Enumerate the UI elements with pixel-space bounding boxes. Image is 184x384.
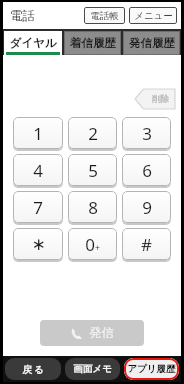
staticText: ∗ (31, 234, 46, 254)
staticText: 1 (33, 122, 43, 145)
staticText: ダイヤル (9, 36, 57, 50)
staticText: # (141, 233, 152, 256)
staticText: 発信 (89, 325, 114, 341)
button[interactable]: 6 (122, 154, 171, 186)
staticText: 画面メモ (73, 363, 112, 375)
staticText: 2 (88, 122, 98, 145)
button[interactable]: 8 (68, 191, 117, 223)
button[interactable]: 3 (122, 117, 171, 149)
button[interactable]: 削除 (135, 89, 175, 109)
button[interactable]: 発信履歴 (123, 31, 180, 55)
staticText: 9 (142, 196, 152, 219)
button[interactable]: 1 (13, 117, 63, 149)
staticText: 発信履歴 (129, 36, 175, 50)
button[interactable]: アプリ履歴 (124, 358, 179, 380)
staticText: 着信履歴 (70, 36, 116, 50)
button[interactable]: 7 (13, 191, 63, 223)
staticText: 電話帳 (90, 10, 119, 22)
staticText: 3 (142, 122, 152, 145)
staticText: 6 (142, 159, 152, 182)
staticText: 5 (88, 159, 98, 182)
staticText: メニュー (134, 10, 173, 22)
button[interactable]: 着信履歴 (64, 31, 121, 55)
button[interactable]: ダイヤル (4, 31, 62, 55)
button[interactable]: メニュー (129, 7, 177, 24)
staticText: 0 (85, 233, 95, 256)
button[interactable]: # (122, 228, 171, 260)
button[interactable]: 発信 (40, 320, 144, 346)
button[interactable]: 戻 る (5, 358, 61, 380)
staticText: 電話 (10, 8, 35, 24)
staticText: 削除 (152, 94, 169, 105)
staticText: + (95, 242, 100, 254)
button[interactable]: 電話帳 (84, 7, 125, 24)
button[interactable]: 2 (68, 117, 117, 149)
button[interactable]: 4 (13, 154, 63, 186)
staticText: 戻 る (22, 363, 44, 376)
button[interactable]: ∗ (13, 228, 63, 260)
staticText: アプリ履歴 (127, 363, 176, 375)
staticText: 7 (33, 196, 43, 219)
button[interactable]: 0 (68, 228, 117, 260)
button[interactable]: 画面メモ (65, 358, 120, 380)
staticText: 4 (33, 159, 43, 182)
button[interactable]: 5 (68, 154, 117, 186)
button[interactable]: 9 (122, 191, 171, 223)
staticText: 8 (88, 196, 98, 219)
